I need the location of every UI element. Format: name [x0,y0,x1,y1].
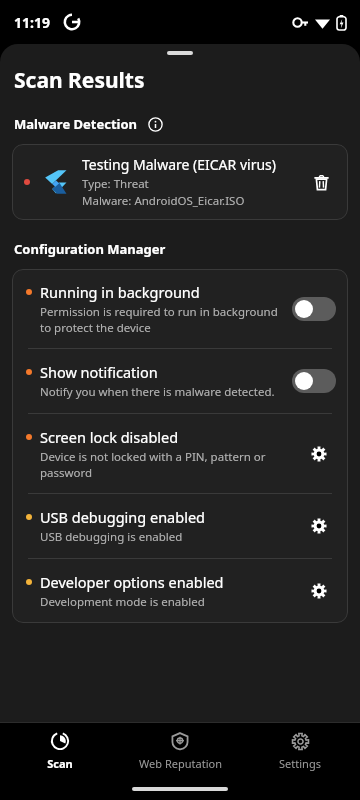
staticText: Settings [279,756,321,771]
staticText: USB debugging is enabled [40,529,183,545]
staticText: Web Reputation [139,756,222,771]
staticText: Malware Detection [14,115,138,133]
button[interactable]: Settings for Developer options enabled [302,574,336,608]
staticText: Scan [47,756,73,771]
staticText: Type: Threat [82,176,149,192]
button[interactable]: Testing Malware (EICAR virus) [12,144,348,220]
staticText: Development mode is enabled [40,594,205,610]
staticText: Configuration Manager [14,240,166,258]
button[interactable]: Scan [0,723,120,778]
button[interactable]: Toggle Show notification [292,369,336,393]
button[interactable]: USB debugging enabled [12,494,348,558]
staticText: Show notification [40,362,158,382]
button[interactable]: Settings [240,723,360,778]
button[interactable]: Information about malware detection [146,115,164,133]
button[interactable]: Developer options enabled [12,559,348,623]
button[interactable]: Show notification [12,349,348,413]
staticText: Scan Results [14,66,145,95]
staticText: 11:19 [14,13,50,32]
button[interactable]: Running in background [12,269,348,348]
button[interactable]: Delete threat [304,165,338,199]
button[interactable]: Settings for USB debugging enabled [302,509,336,543]
staticText: Developer options enabled [40,572,224,592]
button[interactable]: Settings for Screen lock disabled [302,437,336,471]
staticText: Testing Malware (EICAR virus) [82,155,276,174]
button[interactable]: Screen lock disabled [12,414,348,493]
button[interactable]: Toggle Running in background [292,297,336,321]
staticText: Permission is required to run in backgro… [40,304,280,335]
staticText: Malware: AndroidOS_Eicar.ISO [82,193,245,209]
staticText: Notify you when there is malware detecte… [40,384,275,400]
staticText: Running in background [40,282,200,302]
staticText: USB debugging enabled [40,507,205,527]
staticText: Screen lock disabled [40,427,179,447]
button[interactable]: Web Reputation [120,723,240,778]
staticText: Device is not locked with a PIN, pattern… [40,449,290,480]
